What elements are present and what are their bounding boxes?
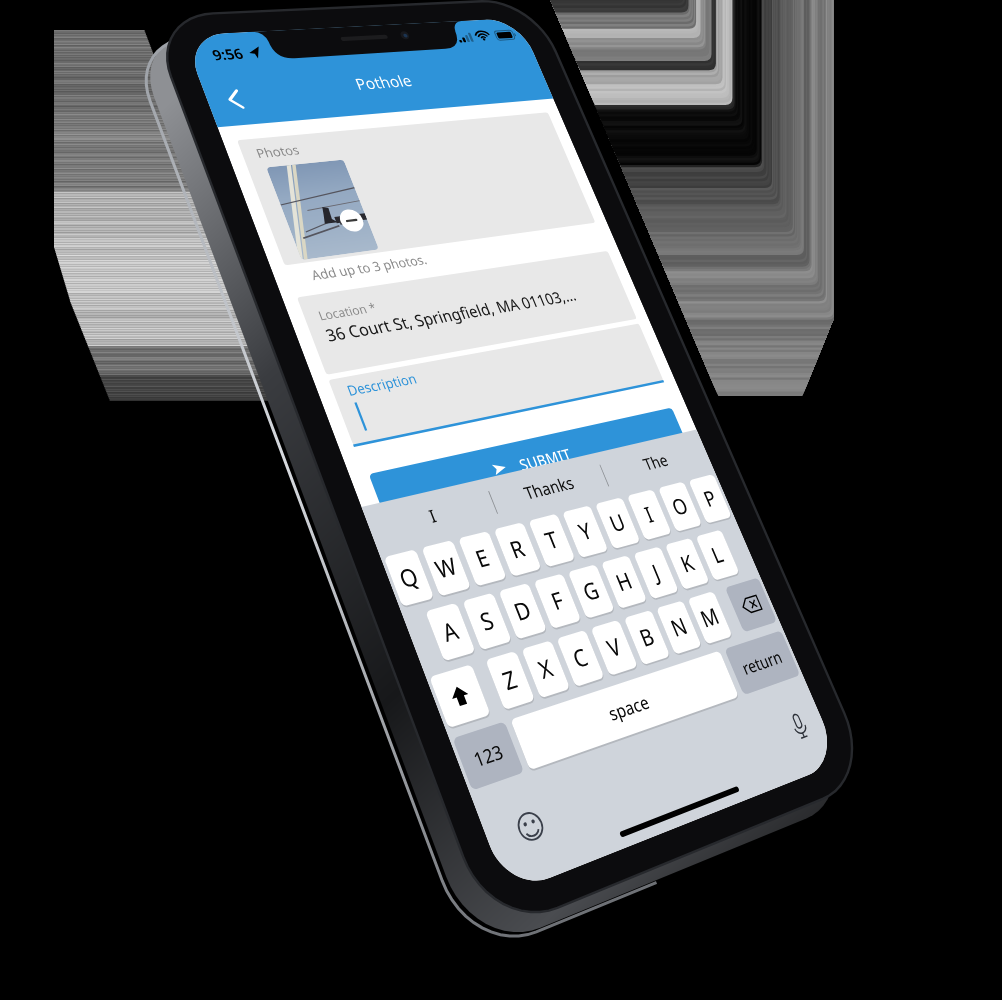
button[interactable]: Pothole report screen on phone mockup <box>0 0 1002 1000</box>
